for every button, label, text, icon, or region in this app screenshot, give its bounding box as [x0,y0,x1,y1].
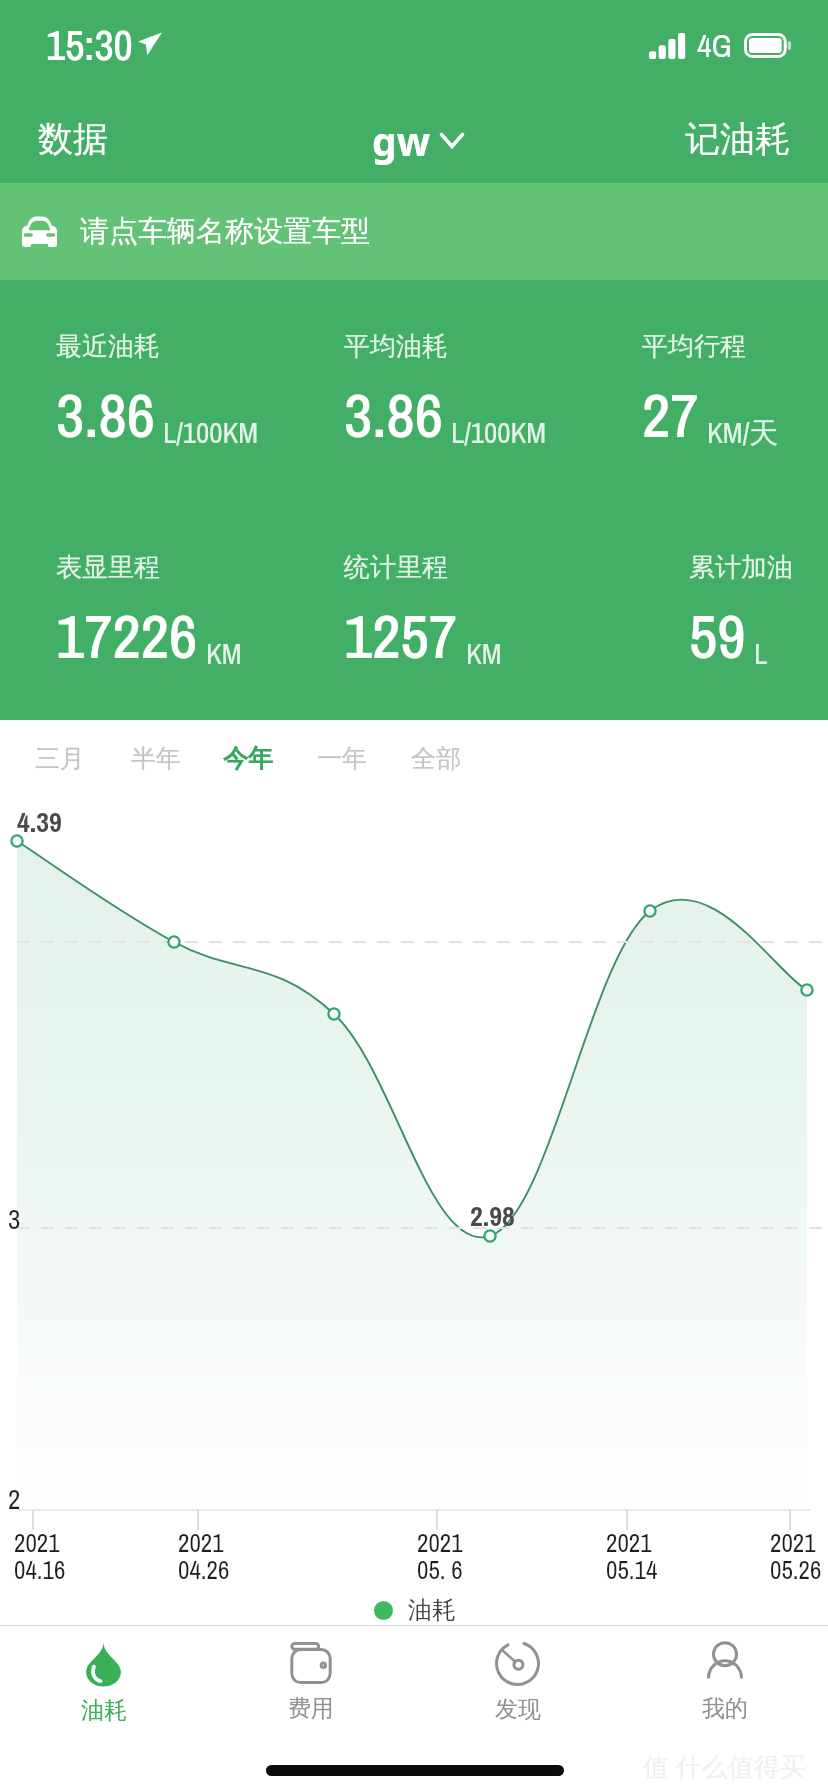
staticText: 全部 [411,743,461,774]
staticText: 3 [8,1201,21,1237]
staticText: 累计加油 [689,551,793,584]
staticText: 4.39 [17,803,62,841]
staticText: 请点车辆名称设置车型 [80,213,370,250]
staticText: 59 [689,594,746,678]
staticText: 记油耗 [685,117,790,161]
button[interactable]: Profile [621,1626,828,1734]
other: Discover [495,1641,540,1686]
staticText: 一年 [317,743,367,774]
button[interactable]: 全部 [399,730,473,787]
staticText: 我的 [702,1694,748,1723]
button[interactable]: 三月 [23,730,97,787]
staticText: 17226 [56,594,198,678]
staticText: 27 [642,373,699,457]
staticText: 平均油耗 [344,330,448,363]
staticText: 4G [697,24,733,67]
staticText: 三月 [35,743,85,774]
staticText: KM/天 [707,413,779,452]
staticText: L [754,634,768,673]
staticText: 1257 [344,594,458,678]
button[interactable]: Discover [414,1626,621,1734]
staticText: KM [206,634,242,673]
button[interactable]: gw [356,106,480,175]
staticText: 半年 [131,743,181,774]
staticText: 2021 05.14 [606,1526,658,1587]
staticText: 2021 05.26 [770,1526,822,1587]
staticText: 发现 [495,1695,541,1724]
staticText: 油耗 [408,1595,456,1625]
staticText: 2021 04.26 [178,1526,230,1587]
other: Fuel [85,1641,122,1687]
staticText: 2021 05. 6 [417,1526,463,1587]
button[interactable]: 今年 [211,730,285,787]
staticText: 3.86 [56,373,155,457]
staticText: 值 什么值得买 [643,1748,806,1784]
button[interactable]: 半年 [119,730,193,787]
staticText: L/100KM [163,413,259,452]
staticText: 今年 [223,743,273,774]
staticText: 表显里程 [56,551,160,584]
staticText: 3.86 [344,373,443,457]
staticText: 平均行程 [642,330,746,363]
staticText: 2.98 [470,1197,515,1235]
staticText: KM [466,634,502,673]
staticText: gw [372,114,431,167]
staticText: L/100KM [451,413,547,452]
staticText: 2021 04.16 [14,1526,66,1587]
staticText: 油耗 [81,1696,127,1725]
button[interactable]: Fuel [0,1626,207,1734]
staticText: 费用 [288,1694,334,1723]
other: Profile [707,1641,743,1685]
staticText: 数据 [38,117,108,161]
button[interactable]: 数据 [0,105,132,173]
other: Expenses [289,1641,333,1685]
button[interactable]: 一年 [305,730,379,787]
staticText: 2 [8,1481,21,1517]
staticText: 15:30 [46,17,133,74]
button[interactable]: Expenses [207,1626,414,1734]
button[interactable]: 请点车辆名称设置车型 [0,183,828,280]
staticText: 最近油耗 [56,330,160,363]
staticText: 统计里程 [344,551,448,584]
button[interactable]: 记油耗 [661,105,828,173]
